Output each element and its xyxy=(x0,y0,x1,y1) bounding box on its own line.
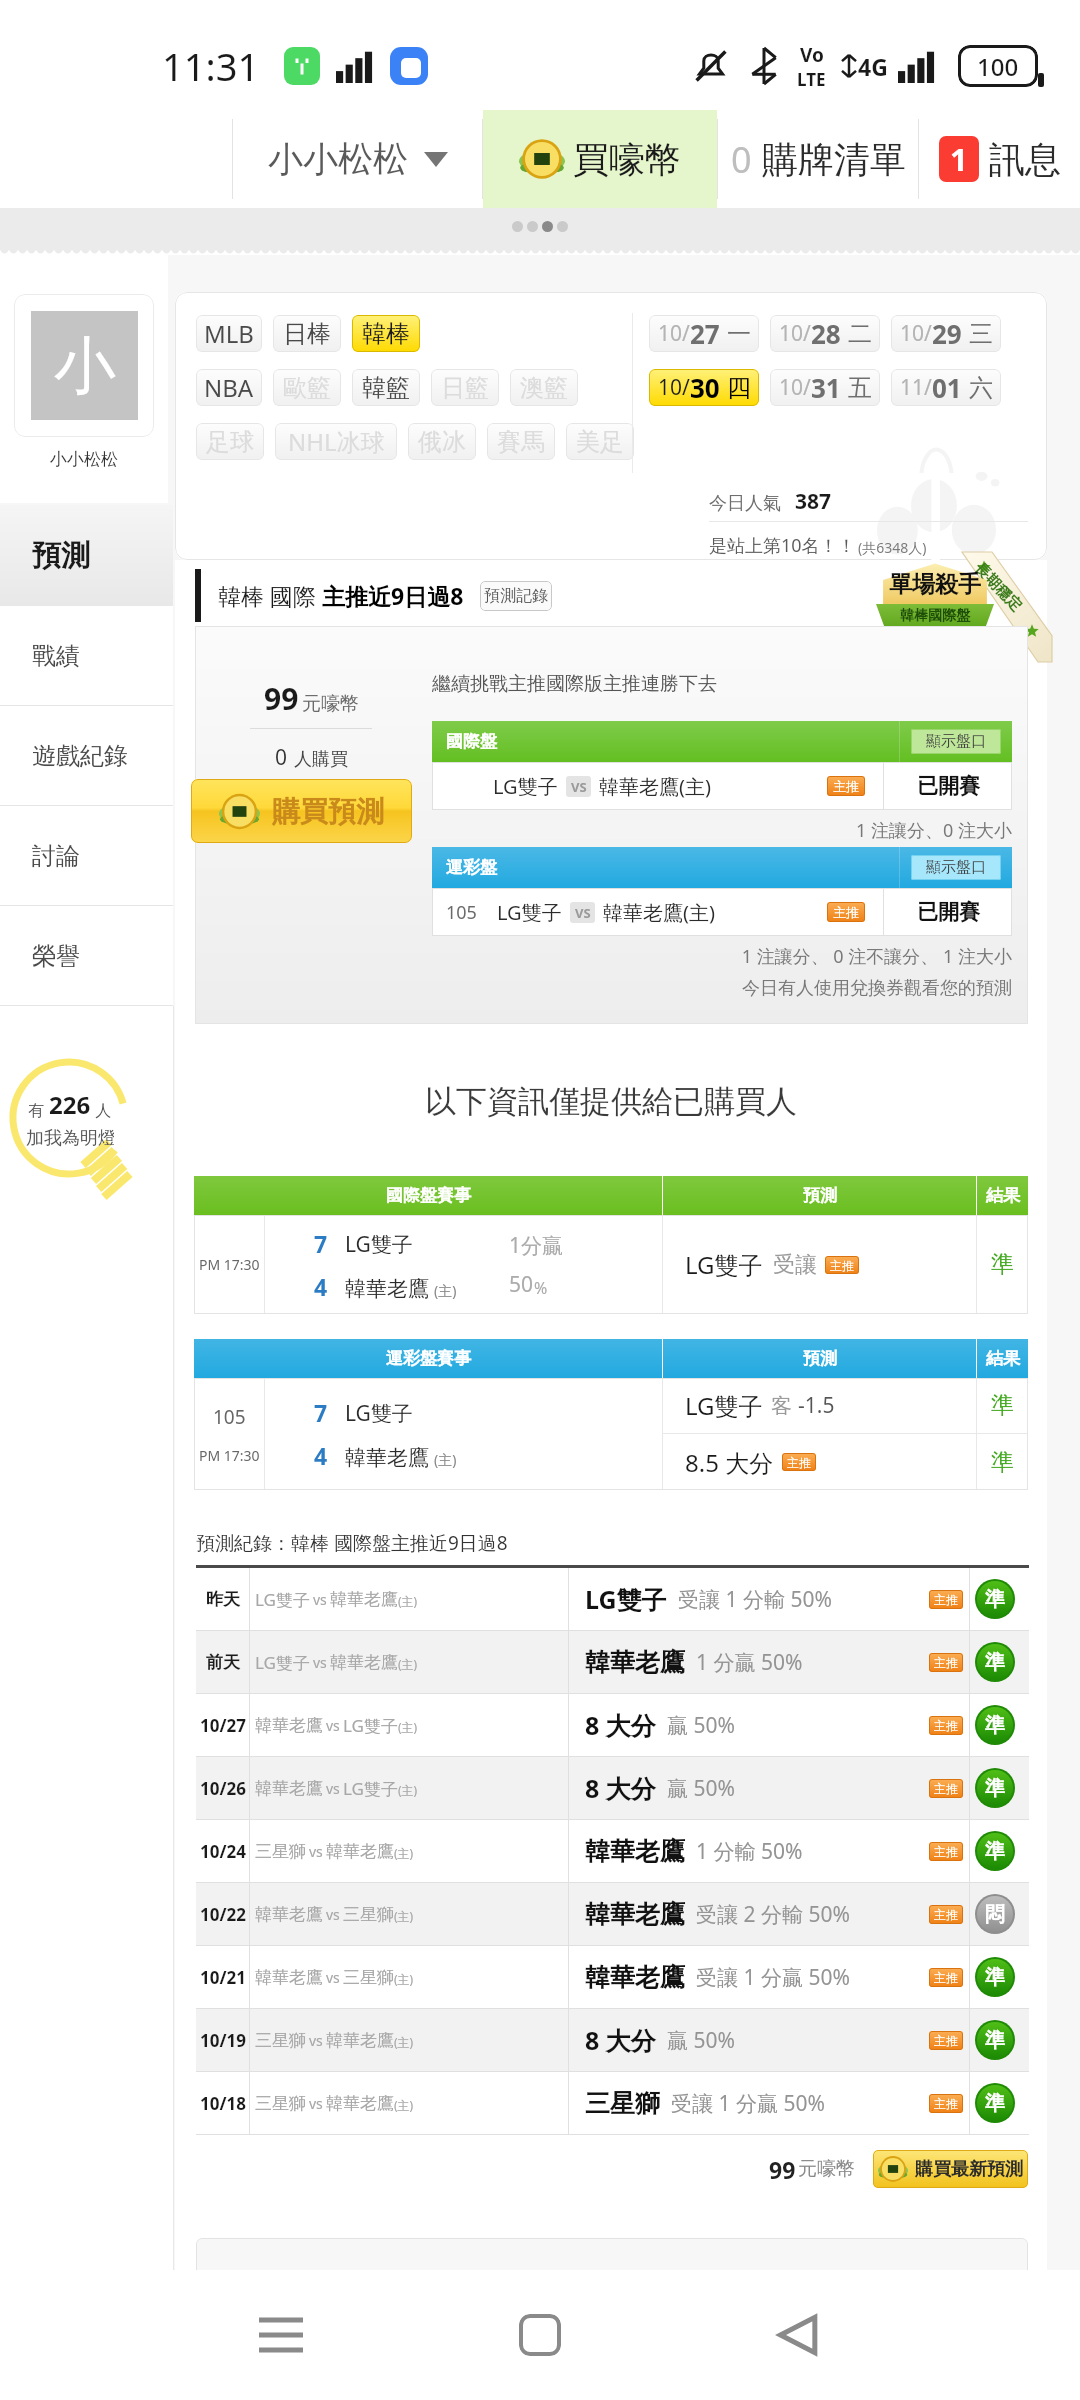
staticText: 韓華老鷹 xyxy=(585,1899,685,1930)
staticText: vs xyxy=(309,1842,323,1861)
staticText: 1 注讓分、0 注大小 xyxy=(432,818,1012,843)
button[interactable]: 遊戲紀錄 xyxy=(0,706,173,806)
staticText: 韓華老鷹 xyxy=(345,1276,429,1302)
staticText: 元嚎幣 xyxy=(798,2157,855,2181)
button[interactable]: Home xyxy=(410,2270,669,2400)
button[interactable]: 10/22 xyxy=(196,1883,1029,1945)
staticText: (共6348人) xyxy=(858,538,927,557)
button[interactable]: 10/ xyxy=(891,315,1001,352)
button[interactable]: 昨天 xyxy=(196,1568,1029,1630)
button[interactable]: 1 xyxy=(919,110,1080,208)
staticText: 29 xyxy=(932,316,962,351)
staticText: 10/24 xyxy=(200,1840,246,1863)
staticText: 受讓 1 分贏 50% xyxy=(696,1963,850,1992)
staticText: 預測 xyxy=(803,1185,837,1206)
staticText: 預測 xyxy=(803,1348,837,1369)
staticText: 準 xyxy=(985,1587,1005,1612)
staticText: 受讓 xyxy=(773,1251,817,1279)
staticText: 人 xyxy=(91,1099,112,1121)
button[interactable]: NBA xyxy=(196,369,262,406)
staticText: LTE xyxy=(797,68,826,91)
staticText: 足球 xyxy=(206,427,254,457)
button[interactable]: 10/27 xyxy=(196,1694,1029,1756)
button[interactable]: 榮譽 xyxy=(0,906,173,1006)
staticText: 有 xyxy=(28,1099,49,1121)
button[interactable]: 韓棒 xyxy=(352,315,420,352)
button[interactable]: 購買預測 xyxy=(191,779,412,843)
button[interactable]: 10/21 xyxy=(196,1946,1029,2008)
staticText: LG雙子 xyxy=(345,1230,413,1259)
staticText: 10/ xyxy=(900,319,932,348)
button[interactable]: 買嚎幣 xyxy=(483,110,717,208)
button[interactable]: 小小松松 profile avatar xyxy=(14,294,154,437)
button[interactable]: 預測記錄 xyxy=(480,581,552,611)
staticText: 三星獅 xyxy=(255,2093,306,2114)
staticText: 是站上第10名！！ xyxy=(709,533,856,558)
button[interactable]: 10/ xyxy=(649,369,759,406)
button[interactable]: MLB xyxy=(196,315,262,352)
button[interactable]: 前天 xyxy=(196,1631,1029,1693)
button[interactable]: 10/ xyxy=(770,315,880,352)
button[interactable]: 賽馬 xyxy=(487,423,555,460)
button[interactable]: 日棒 xyxy=(273,315,341,352)
staticText: MLB xyxy=(204,317,254,350)
staticText: vs xyxy=(326,1968,340,1987)
staticText: 贏 50% xyxy=(667,2026,735,2055)
staticText: 30 xyxy=(690,370,720,405)
staticText: 10/18 xyxy=(200,2092,246,2115)
staticText: % xyxy=(534,1277,548,1299)
staticText: 10/ xyxy=(658,373,690,402)
button[interactable]: 日籃 xyxy=(431,369,499,406)
button[interactable]: 戰績 xyxy=(0,606,173,706)
staticText: 預測 xyxy=(32,537,90,574)
button[interactable]: 俄冰 xyxy=(408,423,476,460)
staticText: 四 xyxy=(727,373,751,403)
button[interactable]: 10/26 xyxy=(196,1757,1029,1819)
button[interactable]: NHL冰球 xyxy=(275,423,397,460)
button[interactable]: 美足 xyxy=(566,423,634,460)
staticText: 10/ xyxy=(779,319,811,348)
button[interactable]: Back xyxy=(669,2270,928,2400)
staticText: 0 xyxy=(731,135,752,184)
staticText: 10/22 xyxy=(200,1903,246,1926)
staticText: 105 xyxy=(213,1404,246,1430)
button[interactable]: 10/19 xyxy=(196,2009,1029,2071)
button[interactable]: 韓籃 xyxy=(352,369,420,406)
staticText: 10/ xyxy=(779,373,811,402)
button[interactable]: 澳籃 xyxy=(510,369,578,406)
staticText: (主) xyxy=(394,1845,414,1861)
staticText: 11:31 xyxy=(162,40,260,92)
button[interactable]: 討論 xyxy=(0,806,173,906)
staticText: vs xyxy=(326,1779,340,1798)
button[interactable]: 預測 xyxy=(0,505,173,606)
staticText: vs xyxy=(326,1905,340,1924)
button[interactable]: 歐籃 xyxy=(273,369,341,406)
staticText: 韓華老鷹 xyxy=(345,1445,429,1471)
button[interactable]: 10/ xyxy=(770,369,880,406)
button[interactable]: 顯示盤口 xyxy=(911,855,1001,880)
staticText: 已開賽 xyxy=(917,899,980,925)
button[interactable]: 11/ xyxy=(891,369,1001,406)
staticText: 運彩盤賽事 xyxy=(386,1348,471,1369)
staticText: 1 分輸 50% xyxy=(696,1837,803,1866)
button[interactable]: 小小松松 xyxy=(233,110,482,208)
staticText: 加我為明燈 xyxy=(26,1127,114,1150)
button[interactable]: 足球 xyxy=(196,423,264,460)
staticText: vs xyxy=(313,1590,327,1609)
button[interactable]: 0 xyxy=(718,110,918,208)
staticText: 1 xyxy=(950,138,968,180)
staticText: 國際盤賽事 xyxy=(386,1185,471,1206)
button[interactable]: Recents xyxy=(152,2270,410,2400)
button[interactable]: 10/24 xyxy=(196,1820,1029,1882)
button[interactable]: 10/18 xyxy=(196,2072,1029,2134)
staticText: 戰績 xyxy=(32,641,80,671)
staticText: 韓華老鷹(主) xyxy=(603,899,715,926)
staticText: 購牌清單 xyxy=(762,137,906,182)
button[interactable]: 購買最新預測 xyxy=(873,2150,1028,2188)
staticText: 元嚎幣 xyxy=(302,692,359,716)
staticText: 以下資訊僅提供給已購買人 xyxy=(175,1082,1047,1121)
staticText: 賽馬 xyxy=(497,427,545,457)
staticText: 繼續挑戰主推國際版主推連勝下去 xyxy=(432,672,717,696)
button[interactable]: 10/ xyxy=(649,315,759,352)
button[interactable]: 顯示盤口 xyxy=(911,729,1001,754)
